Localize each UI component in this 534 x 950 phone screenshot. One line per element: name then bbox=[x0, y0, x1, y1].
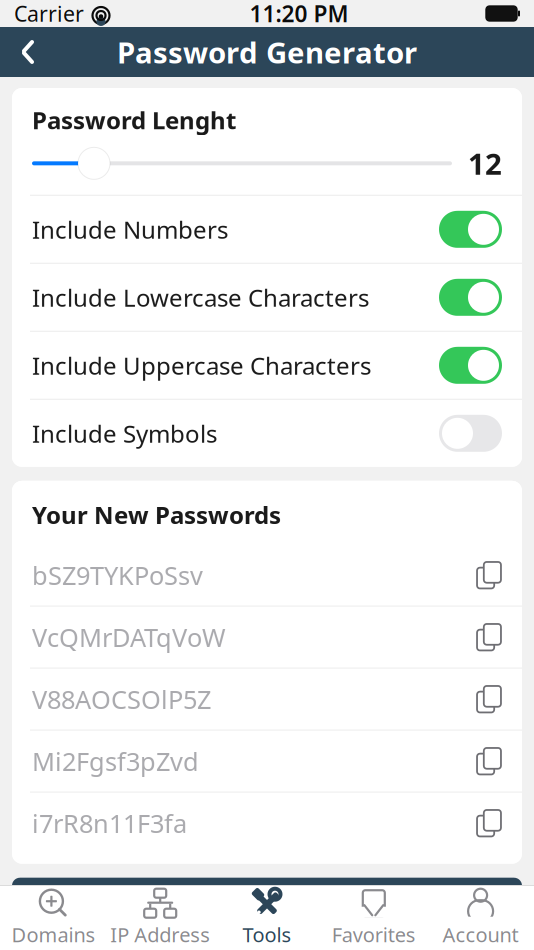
staticText: Copy All Passwords bbox=[149, 887, 415, 924]
staticText: i7rR8n11F3fa bbox=[32, 806, 187, 840]
staticText: Tools bbox=[242, 921, 291, 948]
staticText: Include Symbols bbox=[32, 417, 217, 449]
staticText: Carrier bbox=[14, 0, 84, 28]
button[interactable]: Favorites bbox=[320, 886, 427, 950]
button[interactable]: Include Lowercase Characters bbox=[12, 264, 522, 331]
staticText: Password Lenght bbox=[32, 104, 236, 136]
button[interactable]: Include Numbers bbox=[12, 196, 522, 263]
button[interactable]: VcQMrDATqVoW bbox=[12, 607, 522, 668]
button[interactable]: IP Address bbox=[107, 886, 214, 950]
button[interactable]: Include Symbols bbox=[12, 400, 522, 467]
staticText: V88AOCSOlP5Z bbox=[32, 682, 211, 716]
staticText: Include Numbers bbox=[32, 213, 228, 245]
button[interactable]: V88AOCSOlP5Z bbox=[12, 669, 522, 730]
button[interactable]: Tools bbox=[214, 886, 320, 950]
button[interactable]: Copy All Passwords bbox=[12, 878, 522, 934]
staticText: Your New Passwords bbox=[32, 499, 281, 531]
button[interactable]: i7rR8n11F3fa bbox=[12, 793, 522, 854]
button[interactable]: Mi2Fgsf3pZvd bbox=[12, 731, 522, 792]
staticText: VcQMrDATqVoW bbox=[32, 620, 226, 654]
staticText: Password Generator bbox=[117, 32, 417, 71]
staticText: Include Lowercase Characters bbox=[32, 281, 369, 313]
staticText: IP Address bbox=[110, 921, 210, 948]
staticText: 12 bbox=[468, 144, 502, 183]
staticText: Mi2Fgsf3pZvd bbox=[32, 744, 199, 778]
button[interactable]: Back bbox=[6, 30, 50, 74]
staticText: Favorites bbox=[332, 921, 416, 948]
button[interactable]: bSZ9TYKPoSsv bbox=[12, 545, 522, 606]
staticText: Account bbox=[443, 921, 519, 948]
staticText: Include Uppercase Characters bbox=[32, 349, 371, 381]
staticText: 11:20 PM bbox=[249, 0, 348, 28]
button[interactable]: Domains bbox=[0, 886, 107, 950]
button[interactable]: Include Uppercase Characters bbox=[12, 332, 522, 399]
staticText: Domains bbox=[11, 921, 95, 948]
button[interactable]: Account bbox=[427, 886, 534, 950]
staticText: bSZ9TYKPoSsv bbox=[32, 558, 203, 592]
